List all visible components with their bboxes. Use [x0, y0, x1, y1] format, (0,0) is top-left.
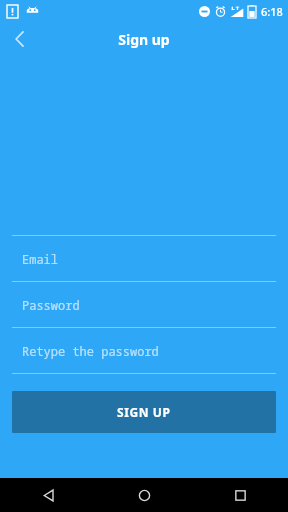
button[interactable]: Retype the password	[0, 328, 288, 373]
button[interactable]: Home	[96, 478, 192, 512]
staticText: SIGN UP	[117, 404, 171, 420]
staticText: 6:18	[261, 4, 283, 19]
staticText: Email	[22, 251, 59, 267]
button[interactable]: Email	[0, 236, 288, 281]
staticText: Password	[22, 297, 80, 313]
button[interactable]: Back	[0, 22, 40, 56]
staticText: Retype the password	[22, 343, 159, 359]
button[interactable]: Recent apps	[192, 478, 288, 512]
staticText: Sign up	[118, 30, 170, 49]
button[interactable]: SIGN UP	[12, 391, 276, 433]
button[interactable]: Back	[0, 478, 96, 512]
button[interactable]: Password	[0, 282, 288, 327]
